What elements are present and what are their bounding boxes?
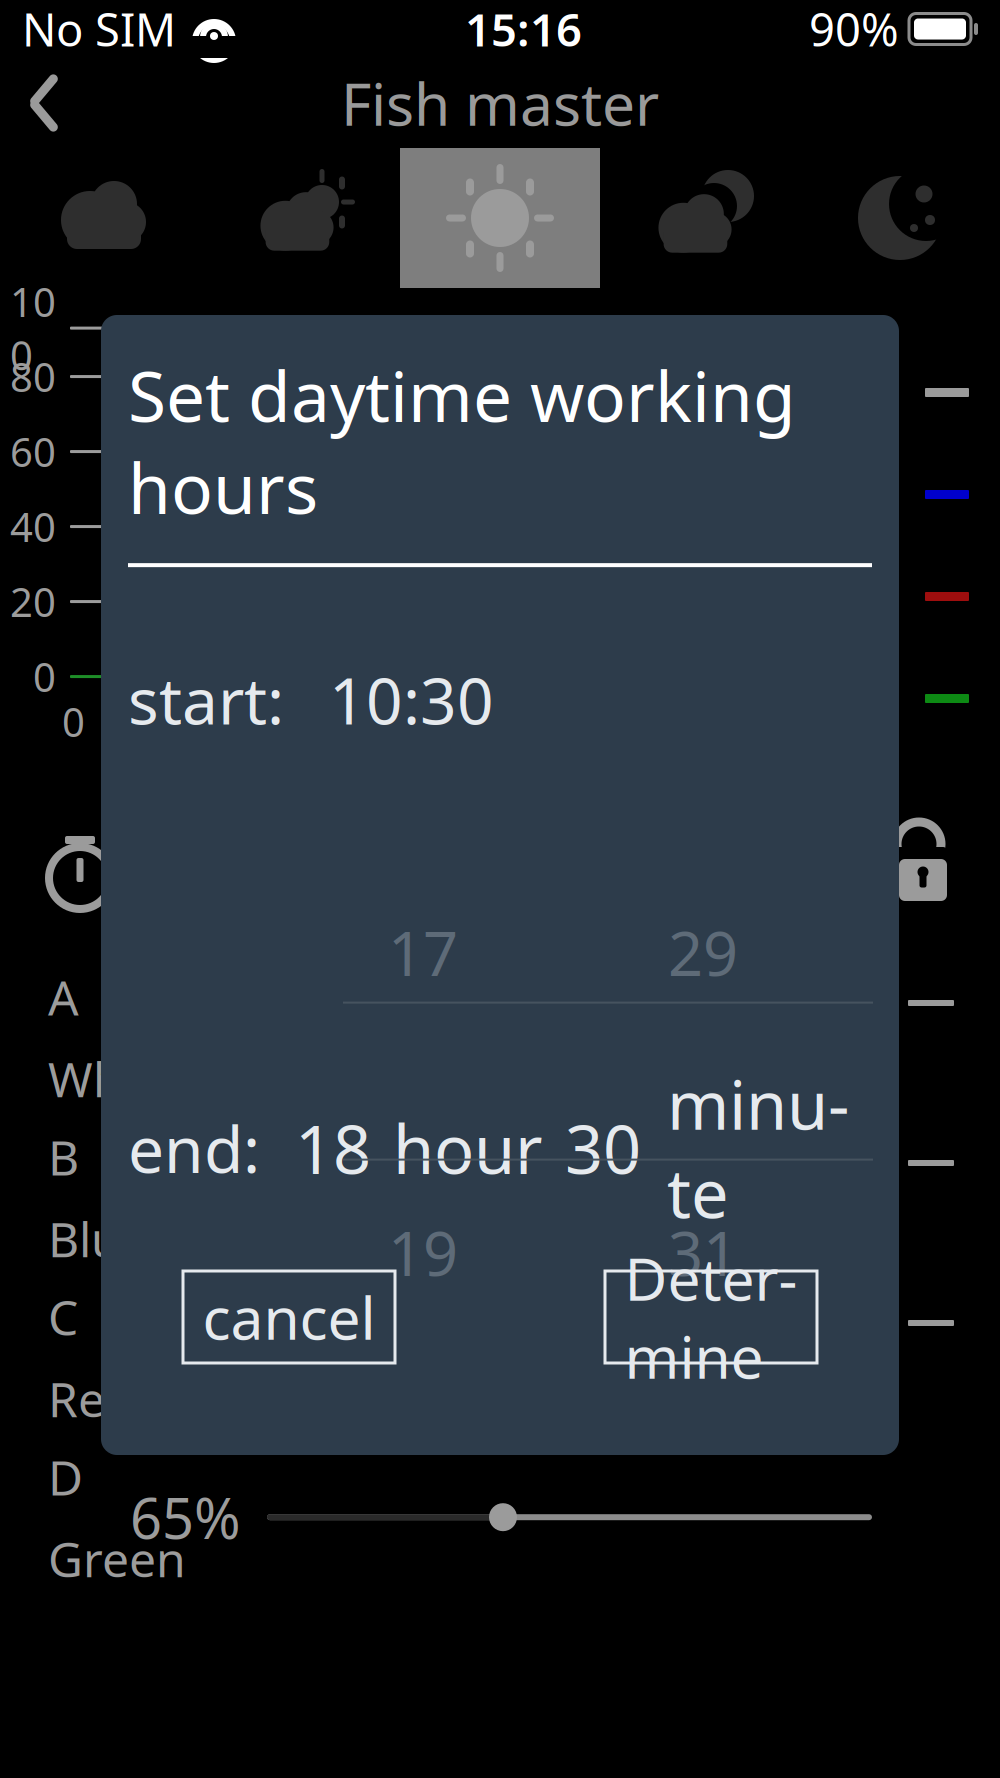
staticText: end: — [128, 1106, 260, 1191]
button[interactable]: Sunny, selected — [400, 148, 600, 288]
staticText: minute — [667, 1060, 849, 1237]
staticText: Set daytime working hours — [128, 349, 796, 533]
button[interactable]: Back — [14, 65, 74, 141]
staticText: 20 — [10, 575, 56, 628]
staticText: 90% — [809, 0, 899, 59]
staticText: 17 — [388, 912, 458, 993]
staticText: B — [48, 1125, 79, 1189]
button[interactable]: Cloudy night — [600, 148, 800, 288]
staticText: 80 — [10, 350, 56, 403]
staticText: A — [48, 965, 79, 1029]
staticText: 0 — [33, 650, 56, 703]
button[interactable]: Determine — [605, 1271, 817, 1363]
staticText: 100 — [10, 275, 56, 381]
staticText: 30 — [565, 1104, 641, 1192]
staticText: start: — [128, 657, 284, 742]
staticText: 19 — [388, 1212, 458, 1293]
button[interactable]: cancel — [183, 1271, 395, 1363]
staticText: cancel — [202, 1278, 375, 1356]
staticText: 18 — [295, 1104, 371, 1192]
staticText: 10:30 — [329, 657, 494, 742]
staticText: 40 — [10, 500, 56, 553]
staticText: Green — [48, 1527, 186, 1590]
staticText: 65% — [130, 1480, 241, 1554]
staticText: Fish master — [341, 64, 659, 142]
staticText: D — [48, 1445, 83, 1509]
staticText: 15:16 — [465, 0, 582, 59]
staticText: White — [48, 1047, 179, 1110]
staticText: Red — [48, 1367, 135, 1430]
staticText: 31 — [668, 1212, 738, 1293]
staticText: 0 — [62, 695, 85, 748]
staticText: C — [48, 1285, 78, 1349]
button[interactable]: Partly sunny — [200, 148, 400, 288]
staticText: Determine — [624, 1239, 797, 1395]
staticText: 60 — [10, 425, 56, 478]
staticText: Blue — [48, 1207, 148, 1270]
staticText: 29 — [668, 912, 738, 993]
staticText: No SIM — [22, 0, 176, 59]
button[interactable]: Cloudy — [0, 148, 200, 288]
staticText: hour — [393, 1104, 543, 1192]
button[interactable]: Night — [800, 148, 1000, 288]
